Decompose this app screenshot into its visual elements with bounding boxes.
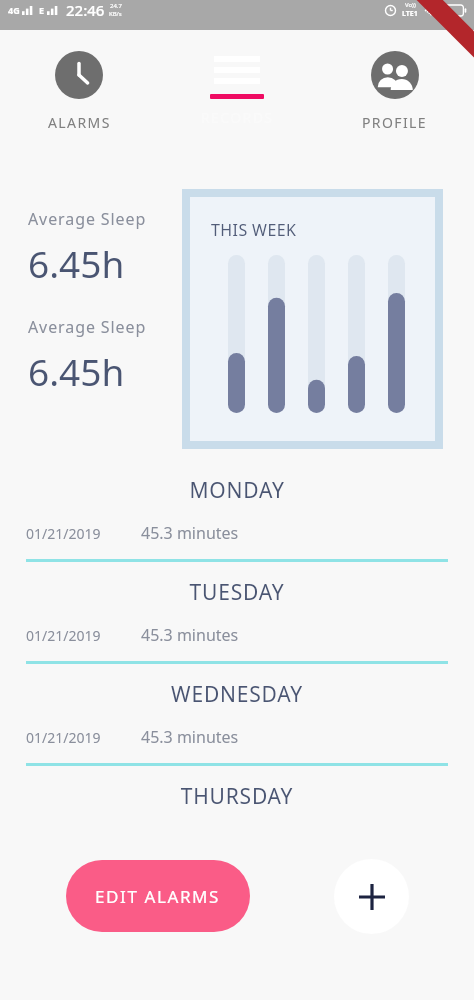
staticText: ALARMS [48,113,111,132]
button[interactable]: Alarms [0,45,158,138]
staticText: 24.7 [110,2,122,10]
staticText: EDIT ALARMS [95,885,221,908]
button[interactable]: Profile [316,45,474,138]
staticText: 45.3 minutes [141,522,239,544]
staticText: TUESDAY [0,578,474,607]
other: Alarms [55,51,103,99]
staticText: 45.3 minutes [141,624,239,646]
staticText: THURSDAY [0,782,474,811]
staticText: WEDNESDAY [0,680,474,709]
staticText: 45.3 minutes [141,726,239,748]
staticText: 01/21/2019 [26,524,101,543]
button[interactable]: RECORDS [158,49,316,133]
staticText: Vo)) [405,1,416,9]
staticText: THIS WEEK [211,219,297,241]
staticText: LTE1 [402,9,418,19]
staticText: 01/21/2019 [26,728,101,747]
staticText: 01/21/2019 [26,626,101,645]
staticText: PROFILE [362,113,428,132]
staticText: 22:46 [66,0,105,20]
staticText: Average Sleep [28,316,147,338]
button[interactable]: THIS WEEK [182,189,443,449]
staticText: 6.45h [28,238,125,288]
staticText: 6.45h [28,346,125,396]
button[interactable]: WEDNESDAY [0,680,474,782]
staticText: KB/s [109,10,122,18]
staticText: 4G [8,4,20,16]
staticText: E [39,4,45,16]
button[interactable]: THURSDAY [0,782,474,811]
button[interactable]: EDIT ALARMS [66,860,250,932]
button[interactable]: Add alarm [334,859,409,934]
button[interactable]: TUESDAY [0,578,474,680]
other: Profile [371,51,419,99]
staticText: Average Sleep [28,208,147,230]
staticText: MONDAY [0,476,474,505]
button[interactable]: MONDAY [0,476,474,578]
